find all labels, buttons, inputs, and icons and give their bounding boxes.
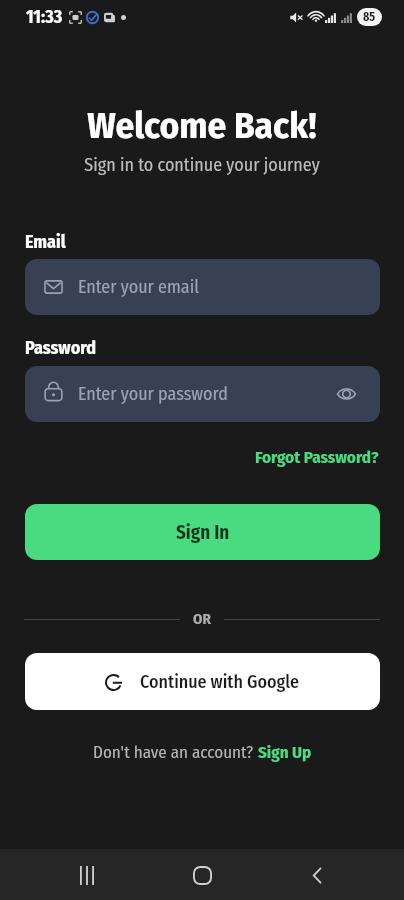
staticText: Sign In xyxy=(176,521,230,544)
button[interactable]: Home xyxy=(178,851,226,899)
button[interactable]: Show password xyxy=(331,379,361,409)
staticText: Sign in to continue your journey xyxy=(0,154,404,176)
button[interactable]: Recents xyxy=(63,851,111,899)
button[interactable]: Continue with Google xyxy=(25,653,380,710)
staticText: Email xyxy=(25,231,66,253)
staticText: Enter your email xyxy=(78,276,199,298)
staticText: OR xyxy=(193,610,211,628)
staticText: Sign Up xyxy=(258,742,312,762)
button[interactable]: Back xyxy=(293,851,341,899)
button[interactable]: Enter your password xyxy=(25,366,380,422)
staticText: 11:33 xyxy=(26,6,63,28)
button[interactable]: Sign Up xyxy=(258,742,312,762)
staticText: Welcome Back! xyxy=(0,103,404,147)
staticText: 85 xyxy=(363,10,376,24)
staticText: Forgot Password? xyxy=(255,447,379,467)
button[interactable]: Enter your email xyxy=(25,259,380,315)
staticText: Enter your password xyxy=(78,383,228,405)
staticText: Don't have an account? xyxy=(93,742,258,762)
staticText: Password xyxy=(25,337,97,359)
button[interactable]: Sign In xyxy=(25,504,380,560)
staticText: Continue with Google xyxy=(140,671,300,693)
button[interactable]: Forgot Password? xyxy=(253,444,381,470)
